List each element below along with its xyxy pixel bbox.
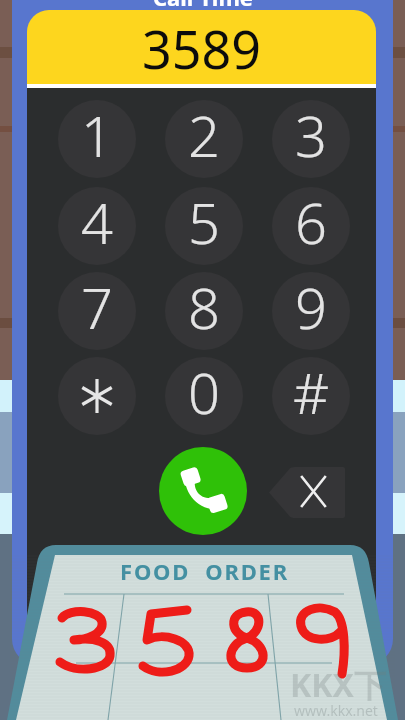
- staticText: 4: [81, 187, 113, 260]
- staticText: FOOD ORDER: [120, 556, 289, 586]
- button[interactable]: 9: [272, 272, 350, 350]
- button[interactable]: [58, 357, 136, 435]
- staticText: 3: [295, 100, 327, 173]
- button[interactable]: Call: [159, 447, 247, 535]
- staticText: Call Time: [153, 0, 253, 12]
- button[interactable]: 0: [165, 357, 243, 435]
- staticText: 6: [295, 187, 327, 260]
- button[interactable]: 3: [272, 100, 350, 178]
- staticText: 1: [81, 100, 113, 173]
- button[interactable]: 2: [165, 100, 243, 178]
- button[interactable]: #: [272, 357, 350, 435]
- button[interactable]: 5: [165, 187, 243, 265]
- staticText: 5: [188, 187, 220, 260]
- staticText: 9: [295, 272, 327, 345]
- staticText: 0: [188, 357, 220, 430]
- staticText: #: [293, 357, 330, 430]
- button[interactable]: 4: [58, 187, 136, 265]
- staticText: 7: [81, 272, 113, 345]
- staticText: www.kkx.net: [294, 701, 378, 720]
- button[interactable]: 8: [165, 272, 243, 350]
- button[interactable]: Backspace: [269, 467, 345, 518]
- staticText: 2: [188, 100, 220, 173]
- button[interactable]: 3589: [27, 10, 376, 84]
- staticText: 8: [188, 272, 220, 345]
- button[interactable]: 1: [58, 100, 136, 178]
- button[interactable]: 6: [272, 187, 350, 265]
- button[interactable]: 7: [58, 272, 136, 350]
- staticText: 3589: [142, 13, 261, 84]
- staticText: KKX下: [290, 663, 386, 707]
